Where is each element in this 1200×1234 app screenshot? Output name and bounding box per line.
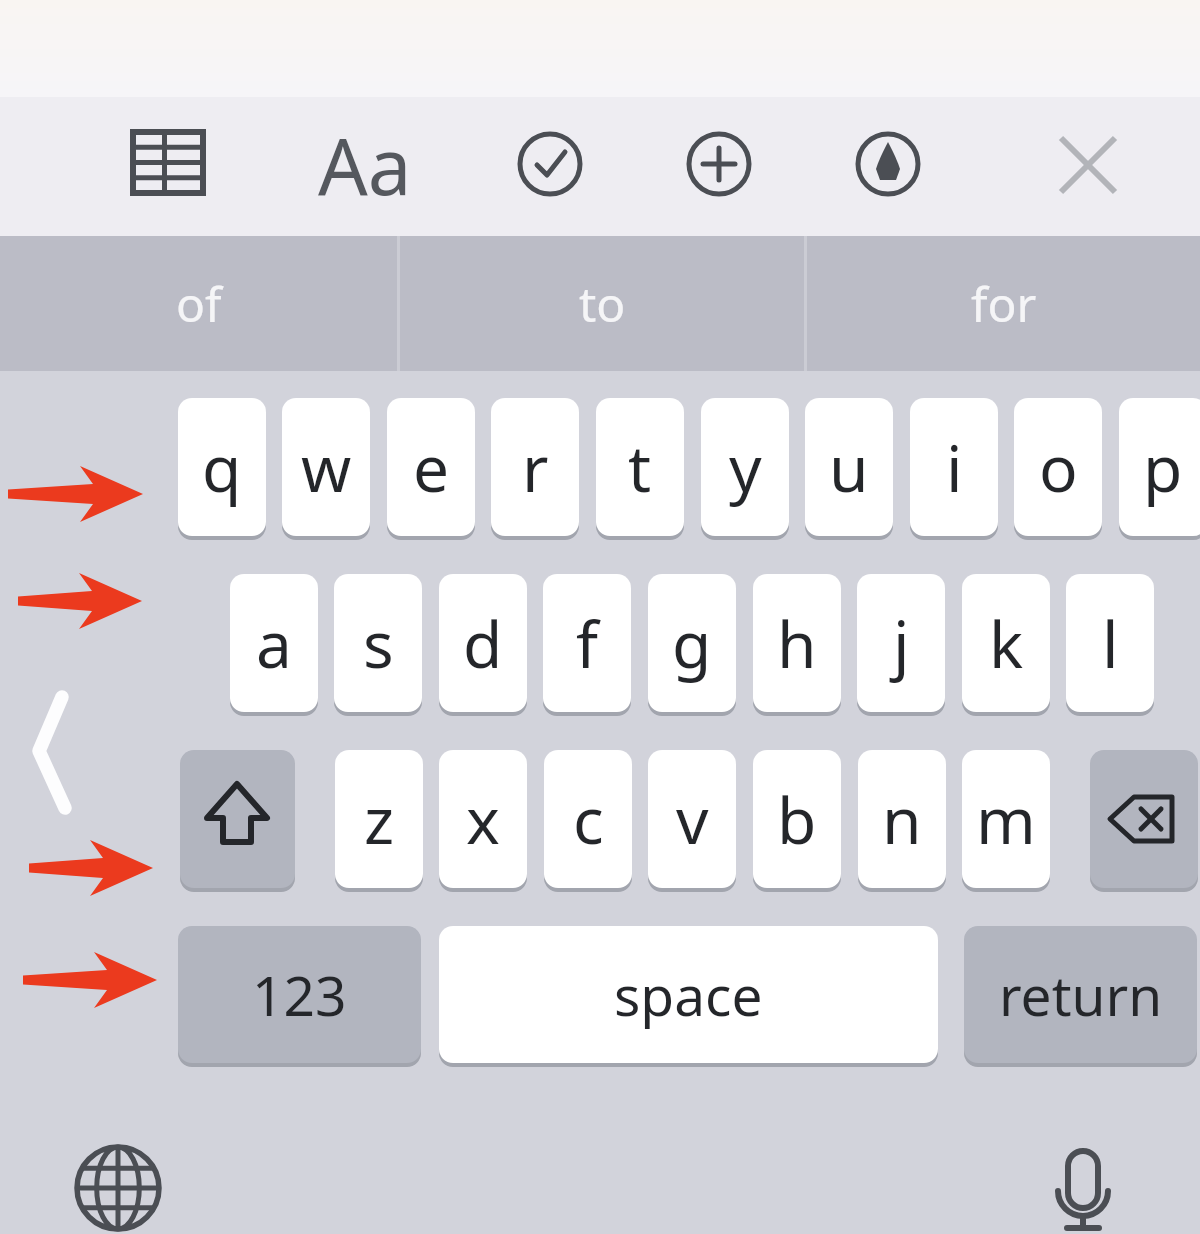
staticText: f [576, 600, 599, 687]
button[interactable]: c [544, 750, 632, 888]
staticText: n [882, 776, 922, 863]
button[interactable]: n [858, 750, 946, 888]
button[interactable] [60, 1130, 176, 1234]
button[interactable]: s [334, 574, 422, 712]
button[interactable]: of [0, 236, 398, 371]
staticText: e [413, 424, 450, 511]
staticText: j [893, 600, 910, 687]
button[interactable]: 123 [178, 926, 421, 1063]
button[interactable] [505, 119, 595, 209]
button[interactable] [118, 117, 218, 212]
button[interactable]: y [701, 398, 789, 536]
button[interactable]: r [491, 398, 579, 536]
button[interactable]: a [230, 574, 318, 712]
staticText: u [829, 424, 869, 511]
button[interactable] [1043, 119, 1133, 209]
button[interactable]: p [1119, 398, 1200, 536]
button[interactable]: b [753, 750, 841, 888]
staticText: return [999, 957, 1163, 1032]
staticText: Aa [318, 112, 412, 218]
staticText: b [777, 776, 817, 863]
button[interactable]: j [857, 574, 945, 712]
staticText: 123 [252, 957, 347, 1032]
staticText: w [301, 424, 352, 511]
staticText: h [777, 600, 817, 687]
staticText: m [976, 776, 1036, 863]
staticText: g [672, 600, 712, 687]
staticText: t [628, 424, 652, 511]
button[interactable]: Aa [300, 110, 430, 220]
button[interactable]: x [439, 750, 527, 888]
button[interactable] [180, 750, 295, 888]
staticText: y [729, 424, 762, 511]
button[interactable]: o [1014, 398, 1102, 536]
button[interactable]: h [753, 574, 841, 712]
button[interactable]: e [387, 398, 475, 536]
staticText: z [364, 776, 395, 863]
staticText: o [1039, 424, 1078, 511]
button[interactable]: u [805, 398, 893, 536]
button[interactable] [674, 119, 764, 209]
button[interactable]: f [543, 574, 631, 712]
staticText: q [202, 424, 242, 511]
button[interactable]: i [910, 398, 998, 536]
button[interactable]: to [400, 236, 805, 371]
button[interactable]: w [282, 398, 370, 536]
staticText: x [466, 776, 500, 863]
staticText: space [614, 957, 763, 1032]
button[interactable]: d [439, 574, 527, 712]
staticText: k [989, 600, 1024, 687]
button[interactable]: q [178, 398, 266, 536]
button[interactable]: k [962, 574, 1050, 712]
staticText: to [579, 271, 626, 336]
button[interactable]: z [335, 750, 423, 888]
button[interactable]: return [964, 926, 1197, 1063]
staticText: for [971, 271, 1037, 336]
staticText: i [946, 424, 963, 511]
button[interactable]: for [807, 236, 1200, 371]
staticText: c [573, 776, 604, 863]
button[interactable] [1030, 1125, 1140, 1234]
button[interactable]: t [596, 398, 684, 536]
button[interactable]: v [648, 750, 736, 888]
button[interactable]: l [1066, 574, 1154, 712]
staticText: l [1102, 600, 1119, 687]
button[interactable]: space [439, 926, 938, 1063]
button[interactable]: m [962, 750, 1050, 888]
staticText: r [522, 424, 549, 511]
staticText: v [676, 776, 709, 863]
button[interactable] [843, 119, 933, 209]
staticText: s [363, 600, 394, 687]
staticText: d [463, 600, 503, 687]
button[interactable]: g [648, 574, 736, 712]
button[interactable] [1090, 750, 1198, 888]
staticText: a [256, 600, 292, 687]
staticText: p [1143, 424, 1183, 511]
staticText: of [176, 271, 222, 336]
